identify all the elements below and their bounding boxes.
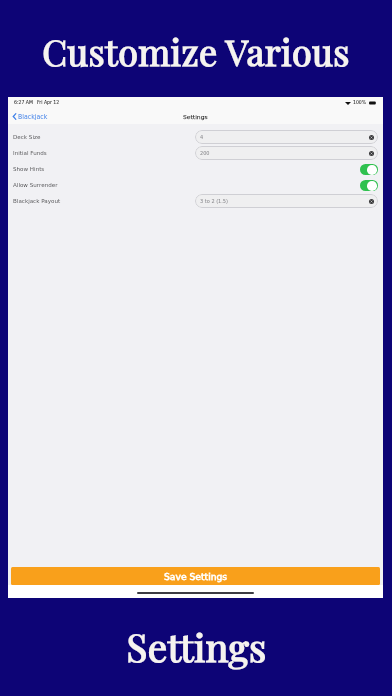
button[interactable]: Clear Initial Funds bbox=[369, 151, 374, 156]
button[interactable]: Show Hints bbox=[8, 161, 383, 177]
button[interactable]: Allow Surrender on bbox=[360, 180, 378, 191]
staticText: Fri Apr 12 bbox=[37, 100, 60, 105]
staticText: Deck Size bbox=[13, 134, 41, 141]
staticText: Allow Surrender bbox=[13, 182, 58, 189]
other: Battery full bbox=[369, 101, 377, 105]
button[interactable]: Blackjack Payout bbox=[8, 193, 383, 209]
staticText: Blackjack Payout bbox=[13, 198, 61, 205]
staticText: Settings bbox=[183, 113, 208, 120]
button[interactable]: Allow Surrender bbox=[8, 177, 383, 193]
button[interactable]: Show Hints on bbox=[360, 164, 378, 175]
staticText: 3 to 2 (1.5) bbox=[200, 198, 229, 204]
staticText: 6:27 AM bbox=[14, 100, 33, 105]
button[interactable]: Initial Funds bbox=[8, 145, 383, 161]
staticText: Show Hints bbox=[13, 166, 45, 173]
button[interactable]: Blackjack bbox=[8, 108, 52, 124]
staticText: 100% bbox=[353, 100, 367, 105]
staticText: Customize Various bbox=[42, 27, 350, 75]
other: Wi-Fi bbox=[345, 101, 351, 105]
staticText: Settings bbox=[126, 620, 267, 671]
staticText: 4 bbox=[200, 134, 204, 140]
button[interactable]: Clear Blackjack Payout bbox=[369, 199, 374, 204]
button[interactable]: Deck Size bbox=[8, 129, 383, 145]
staticText: Save Settings bbox=[164, 571, 228, 582]
button[interactable]: Save Settings bbox=[11, 567, 380, 585]
button[interactable]: Clear Deck Size bbox=[369, 135, 374, 140]
staticText: Blackjack bbox=[18, 113, 48, 120]
staticText: 200 bbox=[200, 150, 210, 156]
staticText: Initial Funds bbox=[13, 150, 47, 157]
